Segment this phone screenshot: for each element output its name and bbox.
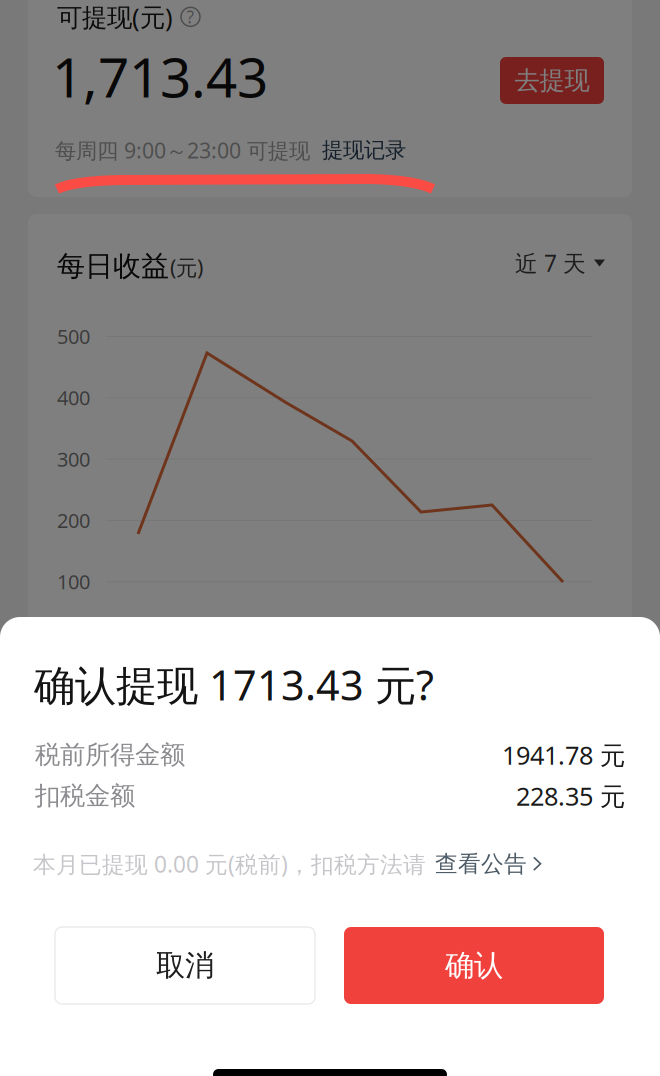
staticText: 1,713.43 [52,40,268,113]
staticText: 400 [57,384,90,411]
staticText: 确认提现 1713.43 元? [34,657,434,712]
staticText: 近 7 天 [515,248,586,278]
staticText: 税前所得金额 [35,739,185,770]
button[interactable]: 确认 [344,927,604,1004]
staticText: 300 [57,446,90,472]
staticText: 228.35 元 [516,779,625,813]
staticText: 每周四 9:00～23:00 可提现 [55,136,310,164]
staticText: 取消 [156,947,214,983]
button[interactable]: 取消 [55,927,315,1004]
staticText: 去提现 [514,65,589,96]
button[interactable]: 提现记录 [322,137,406,163]
staticText: 提现记录 [322,137,406,163]
staticText: (元) [170,253,203,281]
button[interactable]: 去提现 [500,57,604,104]
staticText: 500 [57,323,90,350]
staticText: 本月已提现 0.00 元(税前)，扣税方法请 [33,849,426,879]
staticText: 100 [57,568,90,595]
staticText: 可提现(元) [57,0,173,34]
staticText: 200 [57,507,90,533]
staticText: 确认 [445,947,503,983]
staticText: 扣税金额 [35,780,135,811]
staticText: 1941.78 元 [502,738,625,772]
button[interactable]: 近 7 天 [515,248,605,278]
staticText: 每日收益 [57,249,169,283]
staticText: ? [186,5,194,28]
button[interactable]: 关于可提现金额 [181,7,200,26]
staticText: 查看公告 [435,850,527,878]
button[interactable]: 查看公告 [426,850,542,878]
